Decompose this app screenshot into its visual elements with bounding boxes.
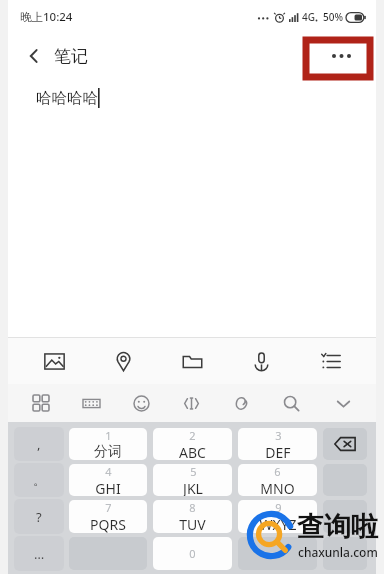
staticText: 7	[105, 500, 112, 515]
staticText: ABC	[179, 443, 206, 460]
staticText: 分词	[94, 443, 122, 460]
button[interactable]: Apps	[26, 388, 56, 418]
button[interactable]: 4	[69, 464, 147, 496]
button[interactable]: 1	[69, 428, 147, 460]
button[interactable]: ,	[14, 427, 64, 461]
button[interactable]: Back	[14, 36, 54, 76]
button[interactable]: 2	[153, 428, 232, 460]
staticText: 哈哈哈哈	[36, 88, 98, 108]
button[interactable]: ?	[14, 499, 64, 534]
staticText: ,	[37, 435, 41, 453]
staticText: TUV	[179, 515, 206, 533]
button[interactable]: More options	[322, 36, 362, 76]
staticText: 1	[105, 428, 112, 443]
button[interactable]: 9	[238, 500, 317, 533]
button[interactable]: 6	[238, 464, 317, 496]
button[interactable]: Location	[100, 338, 146, 384]
button[interactable]: Backspace	[323, 428, 367, 460]
staticText: 6	[274, 464, 281, 479]
button[interactable]: 。	[14, 463, 64, 497]
button[interactable]: 3	[238, 428, 317, 460]
staticText: 2	[189, 428, 196, 443]
staticText: WXYZ	[259, 515, 297, 533]
button[interactable]: Voice	[238, 338, 284, 384]
staticText: 。	[33, 472, 46, 488]
staticText: ?	[36, 508, 42, 526]
button[interactable]: 5	[153, 464, 232, 496]
button[interactable]: Checklist	[307, 338, 353, 384]
button[interactable]: Keyboard layout	[76, 388, 106, 418]
staticText: chaxunla.com	[298, 544, 378, 560]
staticText: 笔记	[54, 46, 88, 67]
button[interactable]	[238, 537, 317, 570]
button[interactable]: Insert image	[31, 338, 77, 384]
staticText: 5	[190, 464, 197, 479]
staticText: 4	[105, 464, 112, 479]
staticText: GHI	[95, 479, 121, 496]
staticText: 9	[275, 500, 282, 515]
button[interactable]: Search	[276, 388, 306, 418]
button[interactable]: Clipboard	[226, 388, 256, 418]
staticText: MNO	[260, 479, 295, 496]
staticText: 50%	[323, 10, 343, 24]
button[interactable]: Emoji	[126, 388, 156, 418]
button[interactable]: Folder	[169, 338, 215, 384]
staticText: 8	[189, 500, 196, 515]
staticText: 4G	[302, 10, 315, 24]
button[interactable]: 0	[153, 537, 232, 570]
staticText: PQRS	[90, 515, 126, 533]
button[interactable]: 7	[69, 500, 147, 533]
button[interactable]: Hide keyboard	[328, 388, 358, 418]
staticText: …	[34, 545, 45, 563]
staticText: 查询啦	[297, 510, 378, 544]
button[interactable]: 8	[153, 500, 232, 533]
button[interactable]: Move cursor	[176, 388, 206, 418]
staticText: 0	[189, 546, 196, 561]
staticText: JKL	[183, 479, 203, 496]
staticText: DEF	[265, 443, 291, 460]
staticText: 晚上10:24	[20, 9, 73, 25]
staticText: 3	[275, 428, 282, 443]
button[interactable]: …	[14, 536, 64, 571]
